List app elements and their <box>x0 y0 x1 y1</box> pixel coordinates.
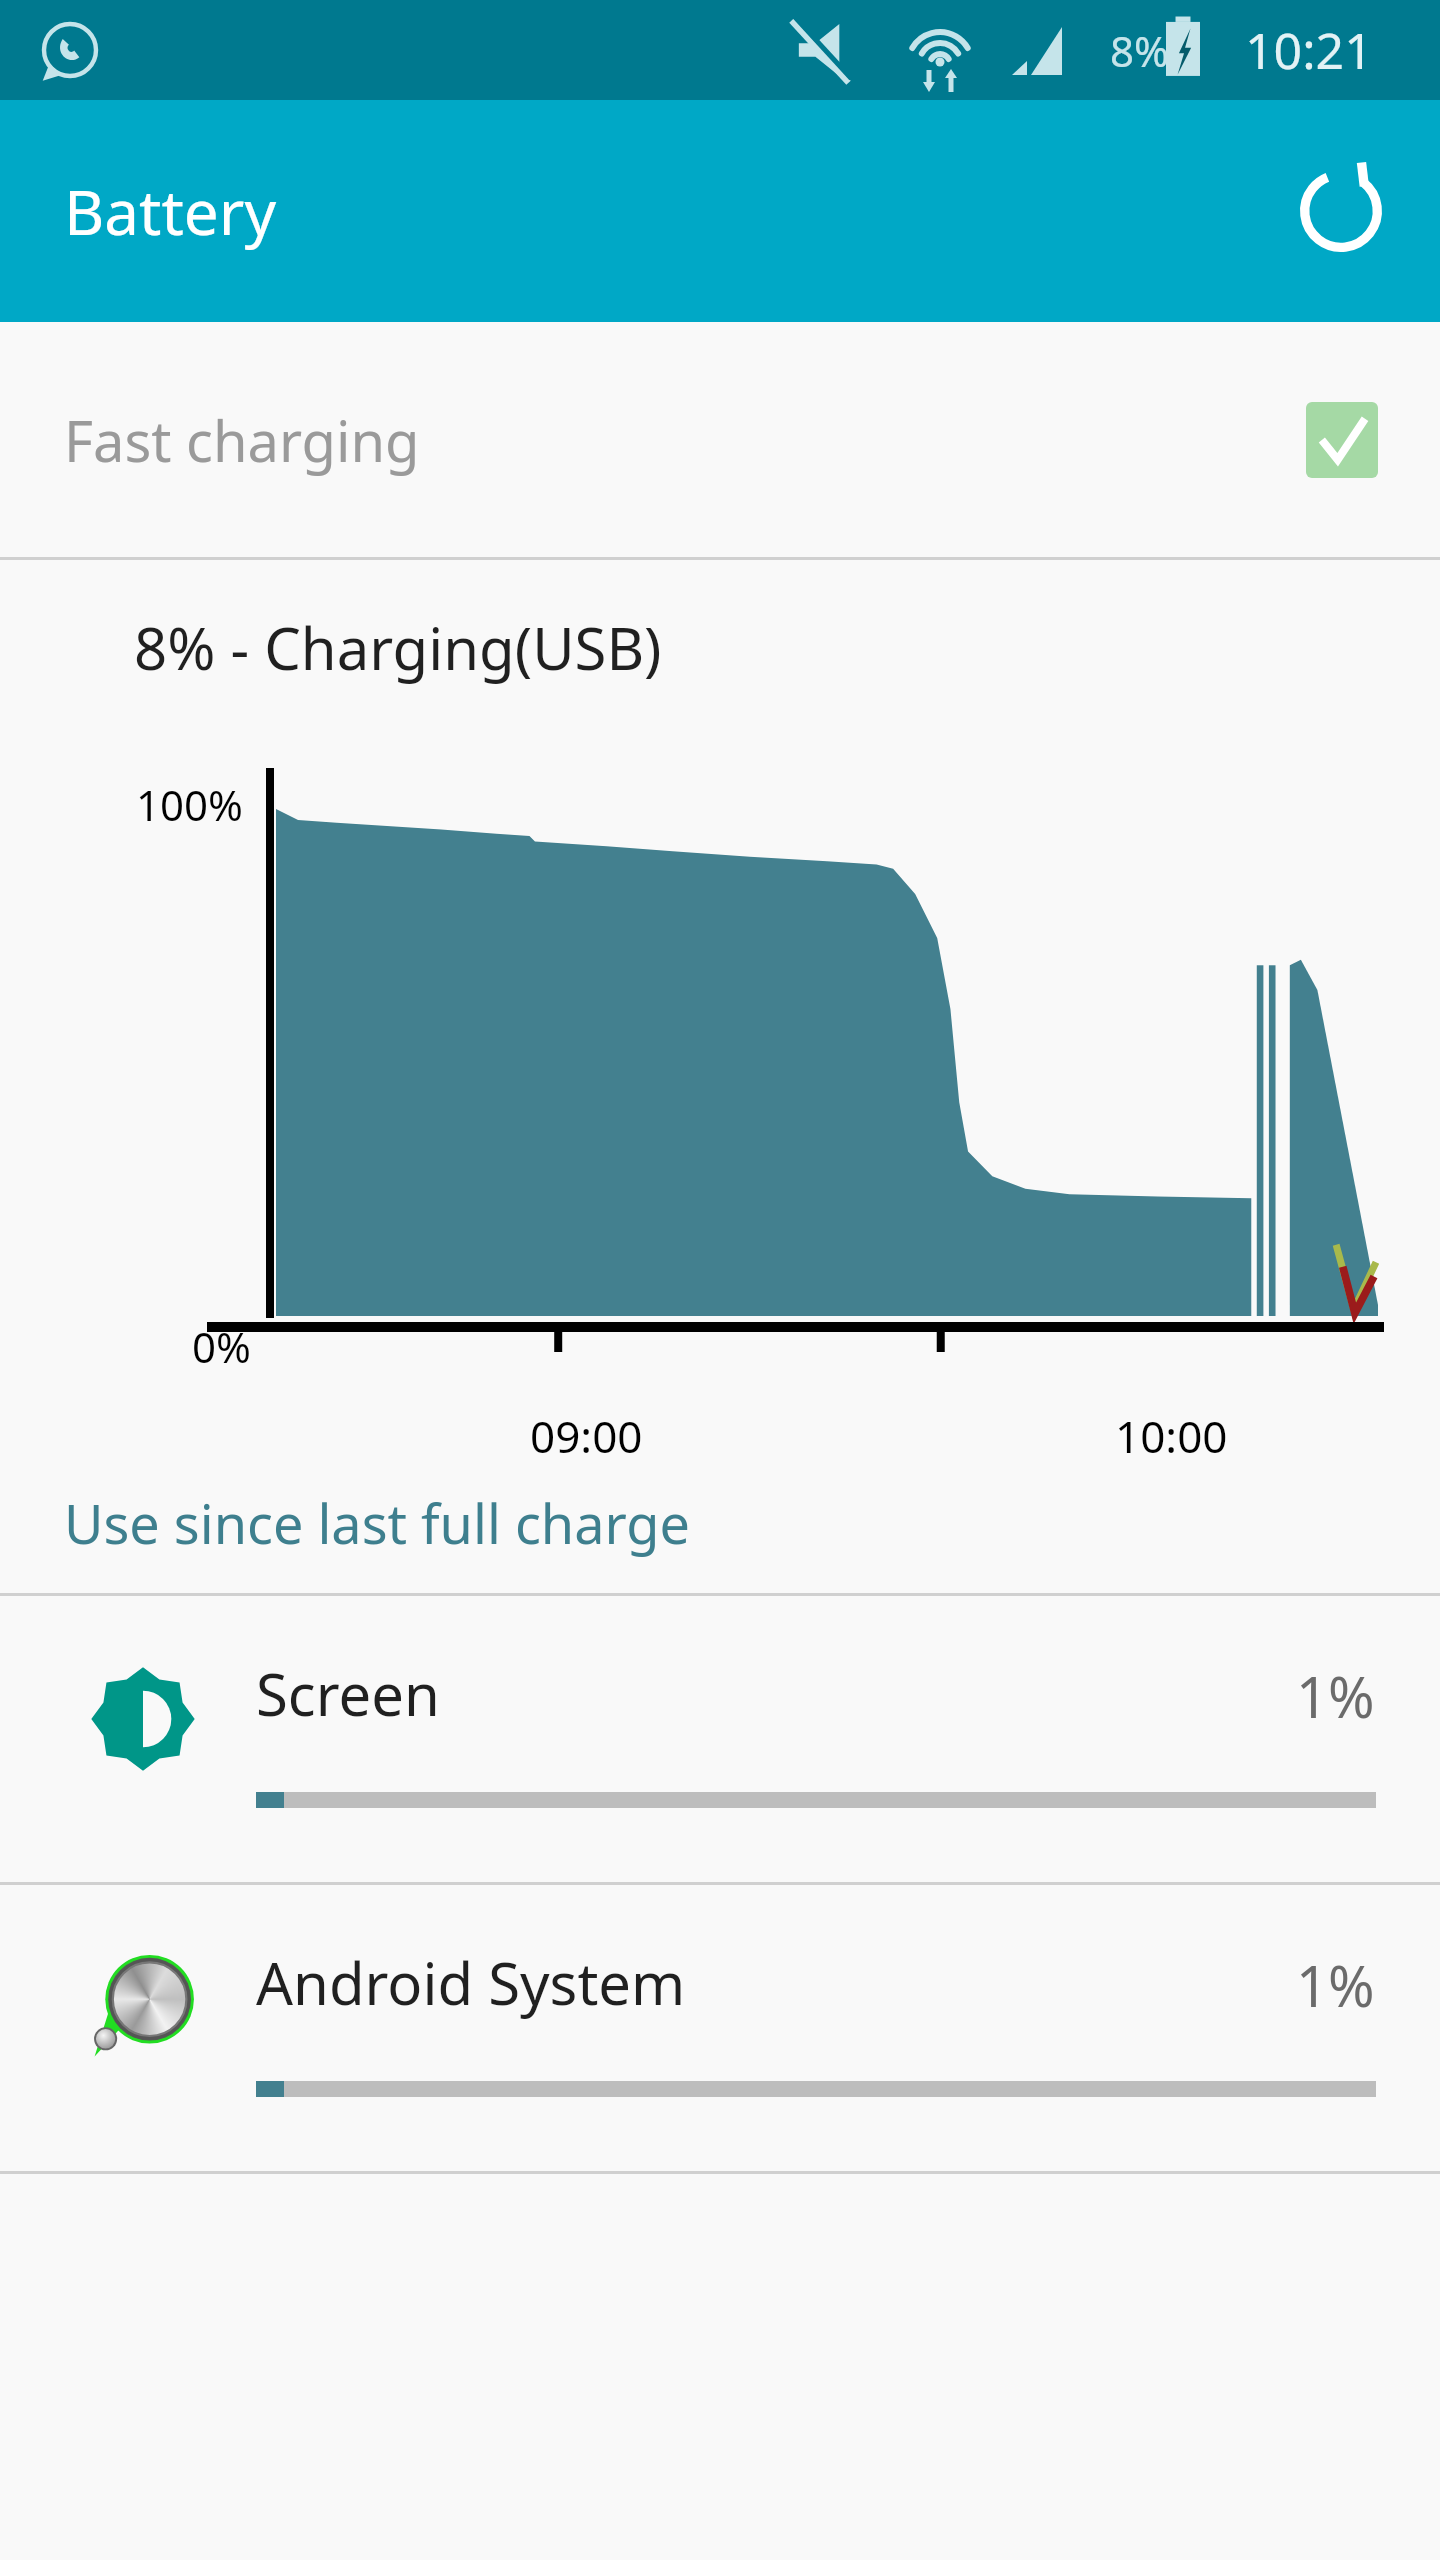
staticText: 10:00 <box>1115 1406 1228 1466</box>
staticText: 8% - Charging(USB) <box>134 608 662 687</box>
staticText: 10:21 <box>1245 16 1373 84</box>
staticText: 1% <box>1296 1947 1375 2023</box>
button[interactable]: Screen <box>0 1596 1440 1882</box>
button[interactable]: Fast charging <box>0 322 1440 557</box>
staticText: 0% <box>192 1318 251 1375</box>
staticText: Battery <box>64 169 277 253</box>
button[interactable]: Refresh <box>1286 156 1396 266</box>
staticText: 8% <box>1110 22 1169 79</box>
staticText: Screen <box>256 1654 440 1733</box>
staticText: 09:00 <box>530 1406 643 1466</box>
staticText: 1% <box>1296 1658 1375 1734</box>
button[interactable]: Android System <box>0 1885 1440 2171</box>
staticText: Fast charging <box>64 402 420 478</box>
staticText: Use since last full charge <box>64 1486 690 1560</box>
staticText: 100% <box>136 776 243 833</box>
button[interactable]: Use since last full charge <box>64 1486 690 1560</box>
staticText: Android System <box>256 1943 686 2022</box>
